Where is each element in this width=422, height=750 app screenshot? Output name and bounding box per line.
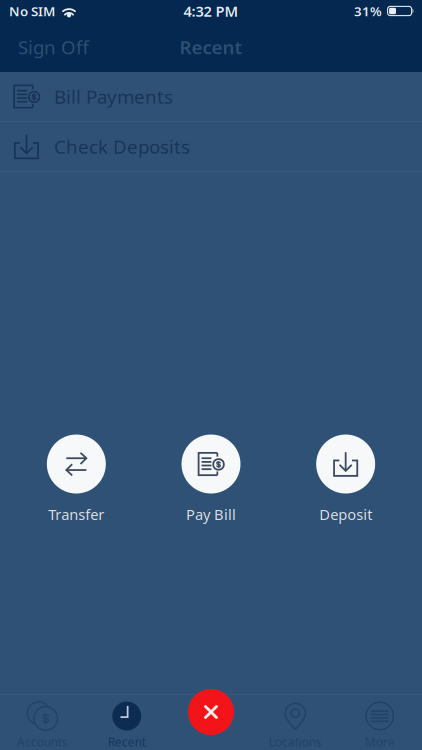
button[interactable]: Recent (84, 694, 169, 750)
button[interactable]: More (337, 694, 422, 750)
staticText: Deposit (319, 504, 372, 524)
staticText: Locations (269, 734, 322, 750)
staticText: Check Deposits (54, 134, 190, 159)
staticText: Recent (179, 35, 242, 59)
button[interactable]: Check Deposits (0, 122, 422, 171)
button[interactable]: Pay Bill (144, 434, 278, 524)
staticText: More (365, 734, 395, 750)
staticText: Sign Off (18, 35, 89, 59)
button[interactable]: Transfer (9, 434, 144, 524)
staticText: Accounts (17, 734, 68, 750)
button[interactable]: Bill Payments (0, 72, 422, 121)
staticText: 4:32 PM (183, 1, 238, 21)
button[interactable]: Close (188, 689, 234, 735)
button[interactable]: Sign Off (0, 22, 101, 72)
staticText: 31% (354, 2, 382, 20)
button[interactable]: Locations (253, 694, 337, 750)
button[interactable]: Deposit (278, 434, 413, 524)
staticText: Bill Payments (54, 84, 173, 109)
staticText: Recent (108, 734, 146, 750)
staticText: Transfer (48, 504, 104, 524)
staticText: Pay Bill (186, 504, 236, 524)
staticText: No SIM (9, 2, 55, 20)
button[interactable]: Accounts (0, 694, 84, 750)
